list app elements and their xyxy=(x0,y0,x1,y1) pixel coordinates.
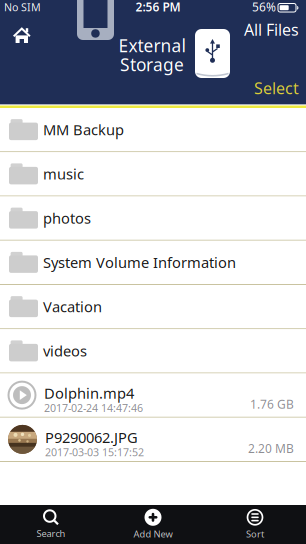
button[interactable]: All Files xyxy=(244,16,306,43)
button[interactable]: System Volume Information xyxy=(0,241,306,285)
staticText: P9290062.JPG xyxy=(45,428,138,447)
staticText: 2:56 PM xyxy=(135,0,180,15)
staticText: Sort xyxy=(246,528,264,540)
staticText: System Volume Information xyxy=(43,253,236,272)
button[interactable]: Sort xyxy=(204,505,306,544)
button[interactable]: Vacation xyxy=(0,285,306,329)
staticText: 1.76 GB xyxy=(250,396,294,412)
button[interactable]: Dolphin.mp4 xyxy=(0,373,306,418)
button[interactable]: photos xyxy=(0,196,306,241)
staticText: Search xyxy=(36,527,65,540)
staticText: Dolphin.mp4 xyxy=(44,383,134,403)
staticText: Select xyxy=(254,77,299,99)
staticText: 56% xyxy=(252,0,276,15)
staticText: photos xyxy=(43,208,91,228)
staticText: Add New xyxy=(133,528,172,540)
staticText: 2017-02-24 14:47:46 xyxy=(44,401,143,415)
button[interactable]: videos xyxy=(0,329,306,373)
staticText: Vacation xyxy=(43,297,102,316)
button[interactable]: Home xyxy=(0,0,37,50)
staticText: MM Backup xyxy=(43,120,124,139)
staticText: External xyxy=(118,34,185,57)
staticText: 2.20 MB xyxy=(248,440,294,456)
button[interactable]: music xyxy=(0,152,306,196)
button[interactable]: P9290062.JPG xyxy=(0,418,306,462)
staticText: music xyxy=(43,164,84,184)
button[interactable]: Add New xyxy=(102,505,204,544)
staticText: Storage xyxy=(120,53,184,76)
button[interactable]: MM Backup xyxy=(0,108,306,152)
button[interactable]: Select xyxy=(254,73,306,103)
button[interactable]: Search xyxy=(0,505,102,544)
staticText: All Files xyxy=(244,19,299,40)
staticText: 2017-03-03 15:17:52 xyxy=(45,445,144,459)
staticText: videos xyxy=(43,341,87,361)
staticText: No SIM xyxy=(4,0,41,14)
